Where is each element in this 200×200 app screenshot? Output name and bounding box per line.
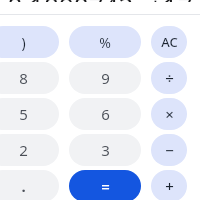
- staticText: 8: [19, 68, 28, 88]
- button[interactable]: Multiply: [151, 98, 187, 130]
- button[interactable]: ): [0, 26, 59, 58]
- button[interactable]: AC: [151, 26, 187, 58]
- staticText: −: [165, 140, 174, 160]
- button[interactable]: 2: [0, 134, 59, 166]
- button[interactable]: %: [69, 26, 141, 58]
- button[interactable]: Equals: [69, 170, 141, 200]
- staticText: ): [21, 33, 26, 52]
- button[interactable]: 6: [69, 98, 141, 130]
- staticText: ÷: [165, 68, 174, 88]
- button[interactable]: 9: [69, 62, 141, 94]
- staticText: 8.1898742e+17: [0, 0, 200, 2]
- button[interactable]: 8: [0, 62, 59, 94]
- button[interactable]: Decimal point: [0, 170, 59, 200]
- staticText: 9: [101, 68, 110, 88]
- button[interactable]: 3: [69, 134, 141, 166]
- staticText: 2: [19, 140, 28, 160]
- button[interactable]: 5: [0, 98, 59, 130]
- staticText: .: [21, 176, 26, 196]
- staticText: =: [101, 176, 110, 196]
- staticText: AC: [161, 33, 178, 51]
- staticText: 3: [101, 140, 110, 160]
- staticText: +: [165, 176, 174, 196]
- staticText: 6: [101, 104, 110, 124]
- button[interactable]: Subtract: [151, 134, 187, 166]
- staticText: 5: [19, 104, 28, 124]
- staticText: ×: [165, 104, 174, 124]
- staticText: %: [99, 33, 111, 52]
- button[interactable]: Add: [151, 170, 187, 200]
- button[interactable]: Divide: [151, 62, 187, 94]
